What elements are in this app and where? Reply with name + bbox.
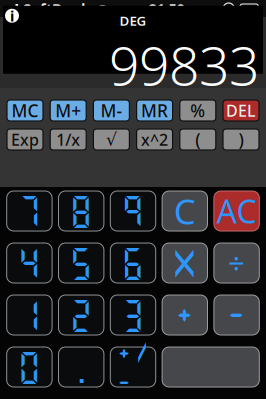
staticText: - — [224, 295, 249, 335]
button[interactable]: X — [162, 243, 207, 283]
staticText: 4 — [17, 243, 42, 283]
staticText: 6 — [120, 243, 145, 283]
staticText: % — [190, 99, 205, 122]
staticText: i — [10, 6, 14, 25]
staticText: DEG — [119, 12, 146, 29]
button[interactable]: √ — [93, 129, 129, 150]
staticText: AC — [217, 190, 257, 232]
staticText: 99833 — [109, 29, 259, 100]
button[interactable]: x^2 — [137, 129, 173, 150]
staticText: 9 — [120, 191, 145, 231]
button[interactable]: . — [58, 347, 104, 387]
staticText: 7 — [17, 191, 42, 231]
button[interactable]: AC — [214, 191, 259, 231]
staticText: M+ — [55, 99, 81, 122]
staticText: x^2 — [141, 129, 168, 150]
staticText: 21:50 — [149, 0, 185, 18]
staticText: M- — [100, 99, 122, 122]
staticText: ( — [195, 128, 200, 151]
staticText: √ — [106, 130, 117, 149]
staticText: +/- — [115, 338, 151, 396]
button[interactable]: C — [162, 191, 207, 231]
button[interactable]: 2 — [58, 295, 104, 335]
staticText: Exp — [11, 129, 39, 150]
staticText: 1/x — [56, 129, 80, 150]
button[interactable] — [162, 347, 259, 387]
button[interactable]: 0 — [7, 347, 52, 387]
button[interactable]: 8 — [58, 191, 104, 231]
button[interactable]: 4 — [7, 243, 52, 283]
button[interactable]: 9 — [110, 191, 156, 231]
staticText: 3 — [120, 295, 145, 335]
button[interactable]: MR — [137, 100, 173, 121]
button[interactable]: Info — [5, 9, 19, 23]
staticText: . — [80, 347, 83, 387]
button[interactable]: MC — [7, 100, 43, 121]
button[interactable]: DEL — [223, 100, 259, 121]
button[interactable]: +/- — [110, 347, 156, 387]
staticText: MR — [141, 99, 168, 122]
staticText: ÷ — [228, 243, 245, 282]
staticText: 2 — [69, 295, 94, 335]
button[interactable]: M+ — [50, 100, 86, 121]
staticText: 1 — [17, 295, 42, 335]
staticText: 0 — [17, 347, 42, 387]
button[interactable]: 1 — [7, 295, 52, 335]
button[interactable]: ( — [180, 129, 216, 150]
button[interactable]: 6 — [110, 243, 156, 283]
staticText: MC — [11, 99, 38, 122]
button[interactable]: ) — [223, 129, 259, 150]
button[interactable]: + — [162, 295, 207, 335]
staticText: 5 — [69, 243, 94, 283]
staticText: SoftBank — [23, 0, 90, 18]
button[interactable]: - — [214, 295, 259, 335]
staticText: C — [174, 188, 196, 234]
button[interactable]: 1/x — [50, 129, 86, 150]
staticText — [198, 347, 223, 387]
staticText: + — [172, 295, 197, 335]
button[interactable]: Exp — [7, 129, 43, 150]
button[interactable]: 3 — [110, 295, 156, 335]
staticText: X — [172, 243, 197, 283]
button[interactable]: M- — [93, 100, 129, 121]
button[interactable]: % — [180, 100, 216, 121]
staticText: DEL — [226, 100, 256, 121]
button[interactable]: 5 — [58, 243, 104, 283]
staticText: ) — [238, 128, 243, 151]
button[interactable]: ÷ — [214, 243, 259, 283]
staticText: 8 — [69, 191, 94, 231]
button[interactable]: 7 — [7, 191, 52, 231]
